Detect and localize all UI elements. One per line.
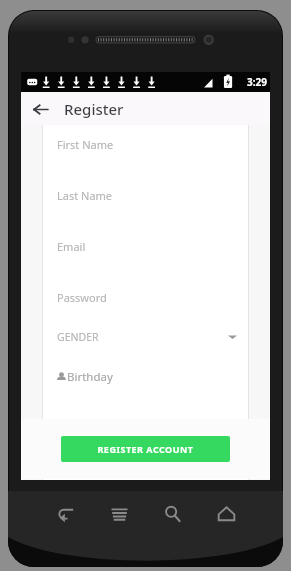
button[interactable]: REGISTER ACCOUNT — [61, 436, 230, 462]
staticText: 3:29 — [247, 75, 267, 89]
button[interactable]: Email — [21, 236, 270, 257]
button[interactable]: Search — [155, 496, 189, 530]
button[interactable]: Back — [25, 94, 55, 124]
button[interactable]: Password — [21, 287, 270, 308]
button[interactable]: Birthday — [21, 366, 270, 387]
staticText: Register — [64, 99, 124, 119]
staticText: Last Name — [57, 188, 113, 203]
button[interactable]: Home — [209, 496, 243, 530]
staticText: Email — [57, 239, 86, 254]
staticText: REGISTER ACCOUNT — [97, 443, 194, 455]
button[interactable]: GENDER — [21, 326, 270, 347]
button[interactable]: Last Name — [21, 185, 270, 206]
staticText: GENDER — [57, 330, 99, 344]
button[interactable]: Menu — [102, 496, 136, 530]
staticText: Birthday — [67, 369, 113, 385]
button[interactable]: First Name — [21, 134, 270, 155]
staticText: First Name — [57, 137, 114, 152]
staticText: Password — [57, 290, 107, 305]
button[interactable]: Back — [48, 496, 82, 530]
